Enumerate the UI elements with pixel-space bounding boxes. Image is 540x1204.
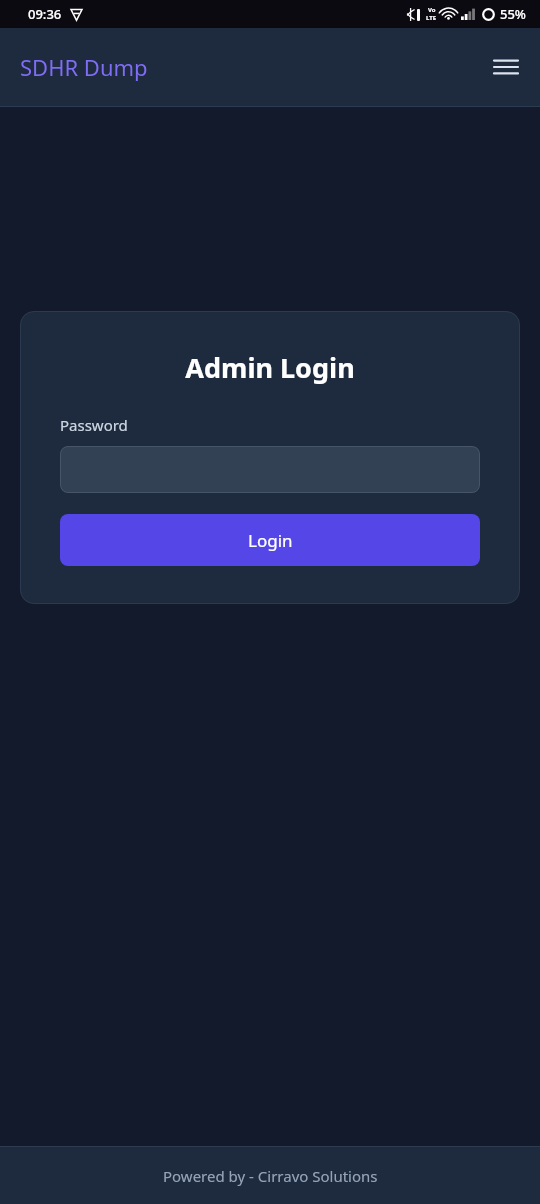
button[interactable]: Menu — [486, 47, 526, 87]
staticText: Admin Login — [60, 349, 480, 386]
staticText: SDHR Dump — [20, 52, 148, 82]
staticText: 09:36 — [28, 5, 62, 23]
staticText: Vo — [428, 6, 436, 14]
staticText: Login — [248, 529, 293, 552]
button[interactable] — [60, 446, 480, 493]
staticText: LTE — [426, 14, 437, 22]
staticText: Powered by - Cirravo Solutions — [163, 1166, 378, 1186]
button[interactable]: Login — [60, 514, 480, 566]
staticText: Password — [60, 415, 128, 435]
staticText: 55% — [500, 5, 526, 23]
